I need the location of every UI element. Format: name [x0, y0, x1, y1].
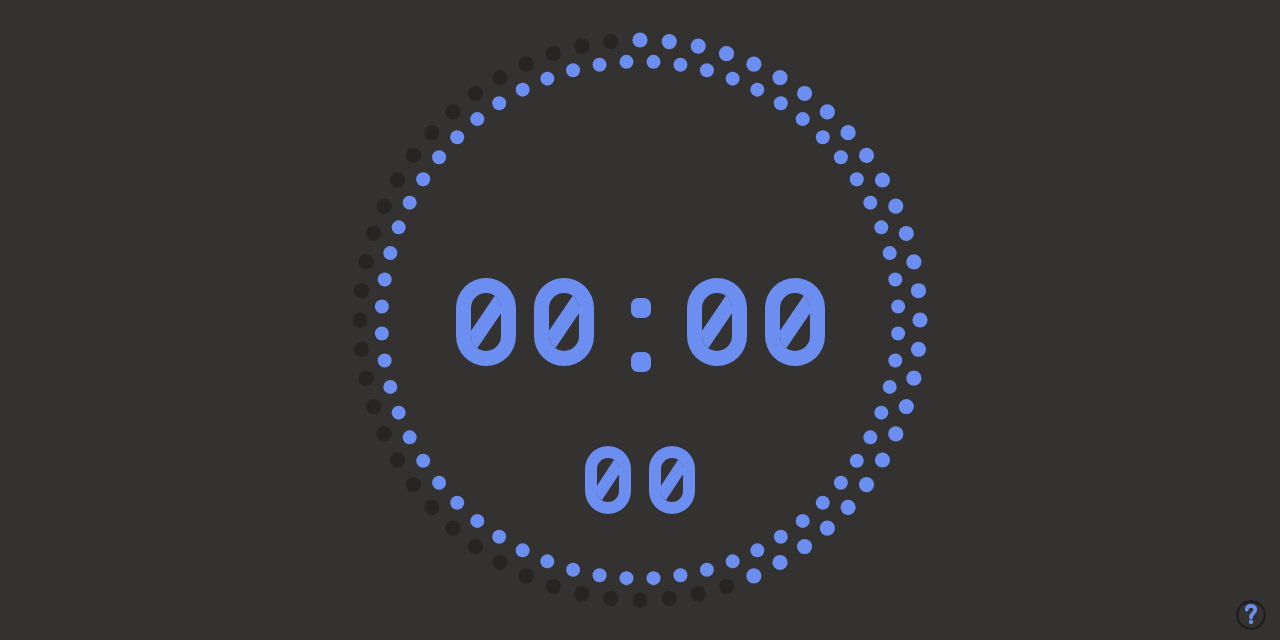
button[interactable]: Help [1236, 600, 1266, 630]
